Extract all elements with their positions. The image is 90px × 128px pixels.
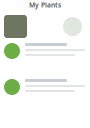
staticText: My Plants	[29, 1, 61, 9]
